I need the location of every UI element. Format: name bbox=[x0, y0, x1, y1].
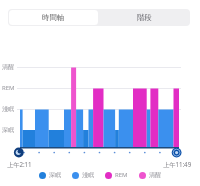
staticText: 淺眠 bbox=[2, 105, 14, 113]
staticText: 上午2:11 bbox=[7, 160, 32, 168]
staticText: 清醒 bbox=[2, 63, 14, 71]
staticText: 時間軸 bbox=[42, 13, 65, 22]
button[interactable]: REM bbox=[105, 171, 128, 179]
staticText: 上午11:49 bbox=[163, 160, 192, 168]
staticText: 深眠 bbox=[2, 126, 14, 134]
button[interactable]: 淺眠 bbox=[72, 171, 94, 179]
staticText: 階段 bbox=[137, 13, 152, 22]
button[interactable]: 階段 bbox=[99, 9, 190, 26]
button[interactable]: 清醒 bbox=[139, 171, 161, 179]
button[interactable]: 深眠 bbox=[39, 171, 61, 179]
staticText: 深眠 bbox=[49, 171, 61, 179]
staticText: 清醒 bbox=[149, 171, 161, 179]
button[interactable]: 時間軸 bbox=[9, 10, 98, 25]
staticText: REM bbox=[115, 171, 128, 179]
staticText: 淺眠 bbox=[82, 171, 94, 179]
staticText: REM bbox=[2, 84, 15, 92]
